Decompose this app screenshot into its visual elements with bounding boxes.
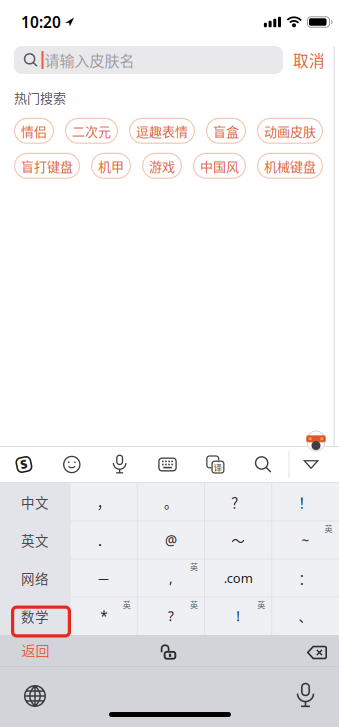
button[interactable]: 数学: [0, 597, 70, 635]
staticText: 情侣: [21, 121, 47, 140]
button[interactable]: 表情: [48, 456, 96, 473]
staticText: @: [165, 531, 177, 549]
staticText: 英文: [21, 530, 49, 550]
button[interactable]: @: [137, 521, 204, 559]
button[interactable]: ,: [137, 559, 204, 597]
button[interactable]: 二次元: [65, 118, 118, 144]
button[interactable]: 删除: [307, 646, 327, 659]
button[interactable]: ～: [204, 521, 272, 559]
button[interactable]: 。: [137, 483, 204, 521]
staticText: 英: [190, 561, 198, 572]
staticText: 中文: [21, 492, 49, 512]
button[interactable]: 逗趣表情: [129, 118, 195, 144]
button[interactable]: 机甲: [91, 153, 131, 179]
staticText: 机械键盘: [264, 156, 316, 175]
staticText: ～: [231, 530, 245, 550]
staticText: 盲盒: [213, 121, 239, 140]
button[interactable]: 搜索: [239, 456, 287, 473]
button[interactable]: 游戏: [142, 153, 182, 179]
button[interactable]: 搜狗: [0, 456, 48, 473]
button[interactable]: 语音: [96, 455, 144, 474]
staticText: ．: [97, 530, 111, 550]
staticText: 英: [324, 523, 332, 534]
button[interactable]: 键盘: [144, 457, 191, 471]
button[interactable]: 情侣: [14, 118, 54, 144]
staticText: 英: [257, 599, 265, 610]
staticText: ,: [169, 569, 173, 587]
button[interactable]: 动画皮肤: [257, 118, 323, 144]
staticText: 网络: [21, 568, 49, 588]
staticText: 中国风: [200, 156, 239, 175]
button[interactable]: 翻译: [191, 455, 239, 473]
button[interactable]: 中国风: [193, 153, 246, 179]
staticText: ：: [298, 568, 312, 588]
staticText: 请输入皮肤名: [44, 49, 134, 71]
staticText: 返回: [21, 640, 49, 660]
button[interactable]: ：: [272, 559, 339, 597]
staticText: 、: [298, 606, 312, 626]
button[interactable]: 盲打键盘: [14, 153, 80, 179]
button[interactable]: 取消: [293, 49, 325, 71]
button[interactable]: ！: [272, 483, 339, 521]
button[interactable]: ？: [204, 483, 272, 521]
button[interactable]: ?: [137, 597, 204, 635]
button[interactable]: !: [204, 597, 272, 635]
button[interactable]: 、: [272, 597, 339, 635]
staticText: ！: [298, 492, 312, 512]
button[interactable]: 返回: [0, 634, 70, 665]
button[interactable]: .com: [204, 559, 272, 597]
staticText: 。: [164, 492, 178, 512]
button[interactable]: 锁定: [161, 644, 176, 660]
staticText: S: [20, 456, 27, 472]
staticText: 盲打键盘: [21, 156, 73, 175]
button[interactable]: ，: [70, 483, 137, 521]
staticText: ？: [231, 492, 245, 512]
button[interactable]: 盲盒: [206, 118, 246, 144]
button[interactable]: *: [70, 597, 137, 635]
staticText: *: [100, 607, 107, 625]
staticText: ~: [301, 531, 309, 549]
staticText: ，: [97, 492, 111, 512]
staticText: ?: [168, 607, 174, 625]
button[interactable]: 英文: [0, 521, 70, 559]
button[interactable]: 中文: [0, 483, 70, 521]
staticText: 机甲: [98, 156, 124, 175]
staticText: －: [97, 568, 111, 588]
staticText: 英: [123, 599, 131, 610]
button[interactable]: 听写: [297, 683, 313, 707]
staticText: 二次元: [72, 121, 111, 140]
staticText: 热门搜索: [14, 88, 66, 107]
staticText: 译: [213, 461, 222, 473]
staticText: 游戏: [149, 156, 175, 175]
staticText: 英: [190, 599, 198, 610]
button[interactable]: 收起键盘: [287, 461, 335, 468]
staticText: 10:20: [21, 11, 61, 32]
staticText: 数学: [21, 606, 49, 626]
button[interactable]: 机械键盘: [257, 153, 323, 179]
button[interactable]: ．: [70, 521, 137, 559]
button[interactable]: ~: [272, 521, 339, 559]
staticText: .com: [224, 569, 253, 587]
staticText: !: [236, 607, 240, 625]
button[interactable]: 网络: [0, 559, 70, 597]
staticText: 动画皮肤: [264, 121, 316, 140]
staticText: 取消: [293, 49, 325, 71]
staticText: 逗趣表情: [136, 121, 188, 140]
button[interactable]: －: [70, 559, 137, 597]
button[interactable]: 搜索皮肤: [14, 46, 283, 74]
button[interactable]: 切换输入法: [24, 685, 46, 707]
